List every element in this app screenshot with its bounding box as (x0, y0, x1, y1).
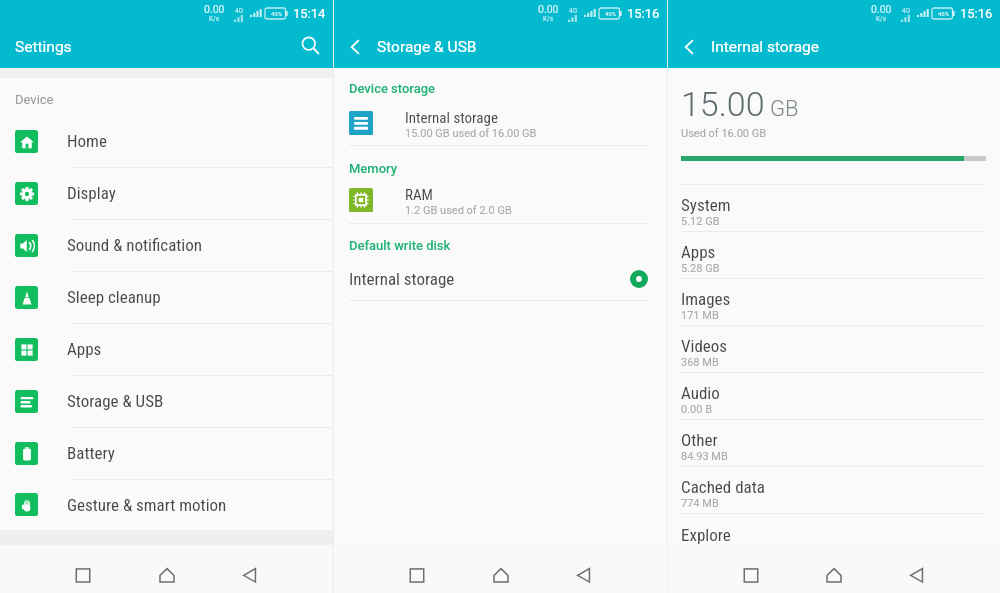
staticText: Explore (681, 525, 731, 545)
staticText: 0.00 (871, 3, 892, 15)
staticText: Apps (681, 242, 716, 262)
button[interactable]: Back (340, 32, 370, 62)
staticText: 4G (569, 7, 578, 15)
staticText: Device (15, 92, 54, 107)
button[interactable]: System (668, 185, 1000, 232)
button[interactable]: Gesture & smart motion (0, 479, 333, 530)
staticText: System (681, 195, 731, 215)
button[interactable]: Audio (668, 373, 1000, 420)
button[interactable]: Cached data (668, 467, 1000, 514)
button[interactable]: Display (0, 167, 333, 219)
staticText: K/s (543, 15, 554, 23)
button[interactable]: Explore (668, 514, 1000, 554)
staticText: Audio (681, 383, 720, 403)
staticText: Internal storage (405, 109, 498, 127)
button[interactable]: Apps (0, 323, 333, 375)
button[interactable]: Internal storage (349, 111, 667, 142)
staticText: 4G (902, 7, 911, 15)
staticText: Display (67, 183, 116, 203)
staticText: Device storage (349, 81, 436, 96)
button[interactable]: Recents (397, 555, 437, 593)
button[interactable]: Home (147, 555, 187, 593)
staticText: Videos (681, 336, 728, 356)
staticText: 45% (271, 10, 283, 17)
staticText: Internal storage (711, 38, 819, 56)
button[interactable]: Search (292, 29, 328, 65)
staticText: Used of 16.00 GB (681, 127, 767, 140)
staticText: Default write disk (349, 238, 451, 253)
button[interactable]: Recents (731, 555, 771, 593)
staticText: 45% (605, 10, 617, 17)
staticText: 0.00 (538, 3, 559, 15)
staticText: 4G (235, 7, 244, 15)
staticText: Cached data (681, 477, 765, 497)
button[interactable]: Back (674, 32, 704, 62)
staticText: 5.12 GB (681, 215, 720, 228)
staticText: 15:14 (293, 6, 326, 21)
staticText: 1.2 GB used of 2.0 GB (405, 204, 512, 217)
staticText: 368 MB (681, 356, 719, 369)
button[interactable]: Videos (668, 326, 1000, 373)
button[interactable]: Apps (668, 232, 1000, 279)
staticText: Settings (15, 38, 72, 56)
button[interactable]: Back (564, 555, 604, 593)
staticText: 0.00 B (681, 403, 713, 416)
staticText: Sleep cleanup (67, 287, 161, 307)
staticText: 774 MB (681, 497, 719, 510)
staticText: Battery (67, 443, 115, 463)
button[interactable]: RAM (349, 188, 667, 219)
button[interactable]: Back (230, 555, 270, 593)
staticText: Sound & notification (67, 235, 203, 255)
staticText: 171 MB (681, 309, 719, 322)
staticText: Home (67, 131, 107, 151)
button[interactable]: Images (668, 279, 1000, 326)
staticText: Apps (67, 339, 102, 359)
staticText: RAM (405, 186, 433, 204)
staticText: Storage & USB (67, 391, 164, 411)
staticText: 15.00 (681, 84, 765, 124)
button[interactable]: Battery (0, 427, 333, 479)
staticText: K/s (876, 15, 887, 23)
button[interactable]: Home (0, 115, 333, 167)
staticText: 15:16 (960, 6, 993, 21)
staticText: GB (770, 96, 799, 122)
button[interactable]: Home (814, 555, 854, 593)
button[interactable]: Other (668, 420, 1000, 467)
button[interactable]: Recents (63, 555, 103, 593)
button[interactable]: Internal storage (349, 266, 648, 292)
button[interactable]: Home (481, 555, 521, 593)
staticText: Other (681, 430, 718, 450)
staticText: 45% (938, 10, 950, 17)
staticText: Gesture & smart motion (67, 495, 227, 515)
staticText: 5.28 GB (681, 262, 720, 275)
staticText: K/s (209, 15, 220, 23)
button[interactable]: Sound & notification (0, 219, 333, 271)
staticText: Storage & USB (377, 38, 477, 56)
staticText: 84.93 MB (681, 450, 728, 463)
staticText: Internal storage (349, 269, 455, 289)
button[interactable]: Back (897, 555, 937, 593)
staticText: 0.00 (204, 3, 225, 15)
button[interactable]: Storage & USB (0, 375, 333, 427)
staticText: Memory (349, 161, 398, 176)
staticText: 15:16 (627, 6, 660, 21)
staticText: Images (681, 289, 731, 309)
staticText: 15.00 GB used of 16.00 GB (405, 127, 537, 140)
button[interactable]: Sleep cleanup (0, 271, 333, 323)
